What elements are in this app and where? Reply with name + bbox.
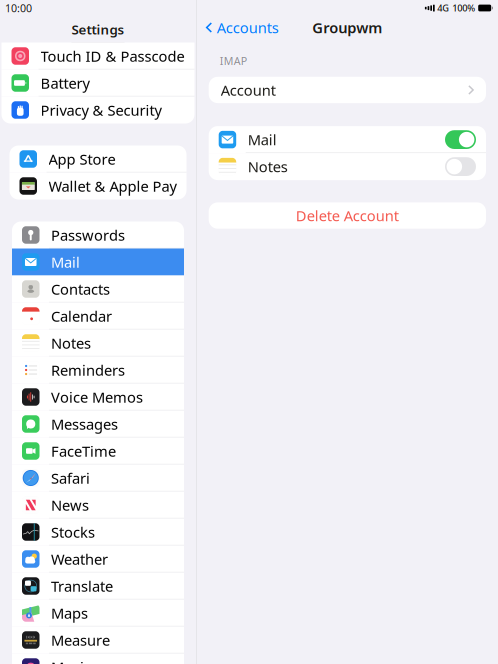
staticText: 100% — [452, 2, 475, 14]
staticText: Mail — [51, 252, 80, 272]
staticText: Battery — [40, 73, 89, 93]
button[interactable]: Calendar — [12, 302, 184, 329]
staticText: Mail — [248, 130, 277, 149]
button[interactable]: Weather — [12, 545, 184, 572]
staticText: Measure — [51, 630, 110, 650]
staticText: Notes — [248, 157, 288, 176]
button[interactable]: Reminders — [12, 356, 184, 383]
staticText: App Store — [48, 149, 115, 169]
button[interactable]: Messages — [12, 410, 184, 437]
staticText: News — [51, 495, 89, 515]
button[interactable]: Accounts — [197, 16, 287, 39]
staticText: Groupwm — [312, 18, 382, 37]
button[interactable]: Maps — [12, 599, 184, 626]
button[interactable]: Privacy & Security — [1, 96, 194, 123]
staticText: Settings — [71, 20, 124, 38]
staticText: Touch ID & Passcode — [40, 46, 184, 66]
staticText: Privacy & Security — [40, 100, 161, 120]
button[interactable]: Account — [209, 77, 486, 103]
button[interactable]: Measure — [12, 626, 184, 653]
button[interactable]: Music — [12, 653, 184, 664]
button[interactable]: Notes — [12, 329, 184, 356]
staticText: Translate — [51, 576, 113, 596]
staticText: Contacts — [51, 279, 110, 299]
staticText: Safari — [51, 468, 90, 488]
staticText: Account — [221, 80, 276, 100]
button[interactable]: Contacts — [12, 275, 184, 302]
button[interactable]: Notes — [209, 153, 486, 180]
staticText: Weather — [51, 549, 108, 569]
button[interactable]: Mail — [12, 248, 184, 275]
button[interactable]: Wallet & Apple Pay — [9, 172, 186, 199]
staticText: Passwords — [51, 225, 125, 245]
button[interactable]: App Store — [9, 145, 186, 172]
button[interactable]: Translate — [12, 572, 184, 599]
staticText: Messages — [51, 414, 118, 434]
button[interactable]: Touch ID & Passcode — [1, 42, 194, 69]
staticText: Accounts — [217, 18, 279, 37]
staticText: IMAP — [220, 54, 247, 68]
staticText: 10:00 — [5, 1, 32, 15]
staticText: FaceTime — [51, 441, 116, 461]
button[interactable]: News — [12, 491, 184, 518]
staticText: Calendar — [51, 306, 112, 326]
button[interactable]: Passwords — [12, 221, 184, 248]
staticText: Wallet & Apple Pay — [48, 176, 176, 196]
staticText: Notes — [51, 333, 91, 353]
staticText: Reminders — [51, 360, 125, 380]
staticText: Maps — [51, 603, 88, 623]
button[interactable]: Delete Account — [209, 202, 486, 229]
staticText: Voice Memos — [51, 387, 143, 407]
button[interactable]: Battery — [1, 69, 194, 96]
button[interactable]: FaceTime — [12, 437, 184, 464]
staticText: 4G — [437, 2, 449, 14]
button[interactable]: Voice Memos — [12, 383, 184, 410]
staticText: Music — [51, 657, 91, 664]
staticText: Stocks — [51, 522, 95, 542]
button[interactable]: Safari — [12, 464, 184, 491]
staticText: Delete Account — [296, 206, 399, 225]
button[interactable]: Mail — [209, 126, 486, 153]
button[interactable]: Stocks — [12, 518, 184, 545]
